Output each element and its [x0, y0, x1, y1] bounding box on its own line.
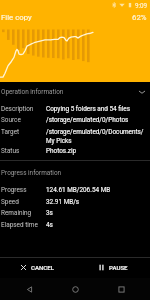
staticText: CANCEL [31, 264, 55, 271]
staticText: Elapsed time [1, 221, 46, 229]
button[interactable]: Operation information [0, 86, 150, 98]
staticText: Status [1, 147, 46, 155]
staticText: Progress information [1, 169, 146, 177]
staticText: Photos.zip [46, 147, 147, 155]
staticText: Copying 5 folders and 54 files [46, 105, 147, 113]
button[interactable]: PAUSE [75, 258, 150, 277]
button[interactable]: Back [18, 278, 40, 300]
staticText: Target [1, 128, 46, 136]
staticText: Remaining [1, 209, 46, 217]
staticText: Speed [1, 198, 46, 206]
staticText: /storage/emulated/0/Photos [46, 116, 147, 124]
staticText: 32.91 MB/s [46, 198, 147, 206]
button[interactable]: Home [64, 278, 86, 300]
staticText: 62% [132, 13, 147, 22]
staticText: Source [1, 116, 46, 124]
staticText: 124.61 MB/206.54 MB [46, 186, 147, 194]
staticText: PAUSE [109, 264, 128, 271]
staticText: 3s [46, 209, 147, 217]
staticText: 9:09 [135, 2, 148, 9]
button[interactable]: Progress information [0, 167, 150, 179]
staticText: Operation information [1, 88, 138, 96]
staticText: /storage/emulated/0/Documents/ My Picks [46, 128, 147, 144]
staticText: File copy [1, 13, 132, 22]
staticText: Description [1, 105, 46, 113]
staticText: 4s [46, 221, 147, 229]
button[interactable]: Recent apps [110, 278, 132, 300]
button[interactable]: CANCEL [0, 258, 75, 277]
staticText: Progress [1, 186, 46, 194]
